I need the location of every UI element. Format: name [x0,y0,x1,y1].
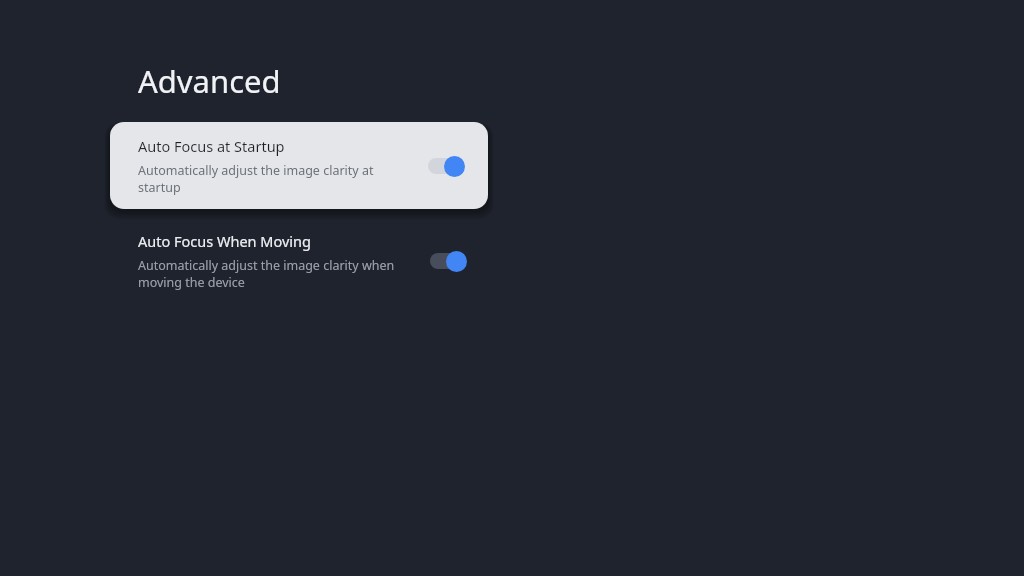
button[interactable]: Auto Focus When Moving [138,227,468,294]
button[interactable]: Auto Focus at Startup [110,122,488,209]
staticText: Automatically adjust the image clarity a… [138,162,374,195]
staticText: Auto Focus at Startup [138,136,285,156]
button[interactable]: Toggle, on [428,249,468,273]
button[interactable]: Toggle, on [426,154,466,178]
staticText: Auto Focus When Moving [138,231,311,251]
staticText: Automatically adjust the image clarity w… [138,257,395,290]
staticText: Advanced [138,60,281,102]
